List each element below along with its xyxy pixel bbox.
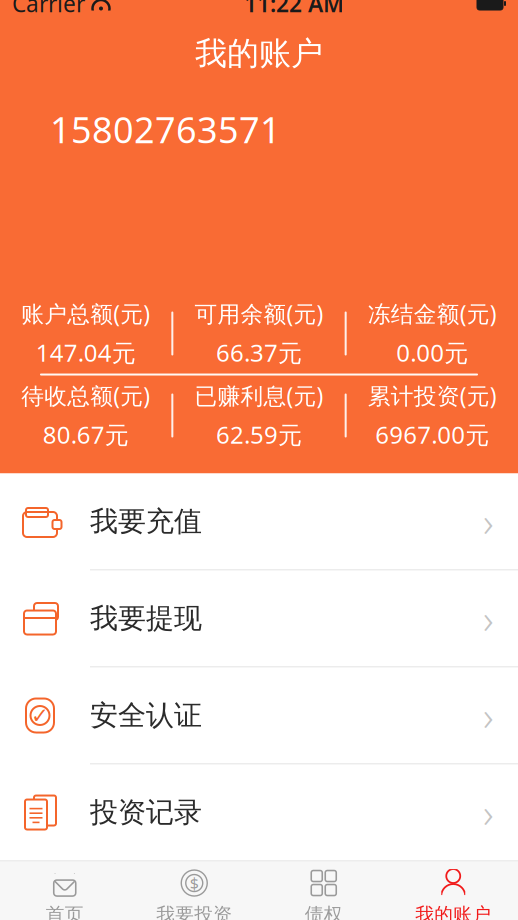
staticText: 15802763571 [50, 105, 281, 153]
button[interactable]: 投资记录 [0, 764, 518, 860]
staticText: 我的账户 [195, 34, 323, 73]
button[interactable]: 债权 [259, 861, 388, 920]
staticText: 冻结金额(元) [368, 298, 497, 329]
staticText: 66.37元 [216, 337, 302, 368]
button[interactable]: 我要充值 [0, 473, 518, 570]
staticText: 我要充值 [90, 504, 202, 539]
staticText: › [483, 786, 494, 839]
staticText: 安全认证 [90, 698, 202, 733]
staticText: 可用余额(元) [194, 298, 323, 329]
staticText: 债权 [305, 903, 343, 920]
staticText: 我要投资 [156, 903, 232, 920]
staticText: › [483, 689, 494, 742]
staticText: 累计投资(元) [368, 380, 497, 411]
staticText: 已赚利息(元) [194, 380, 323, 411]
staticText: 62.59元 [216, 419, 302, 450]
staticText: › [483, 495, 494, 548]
staticText: ✓ [31, 703, 49, 728]
staticText: Carrier [12, 0, 85, 18]
staticText: 6967.00元 [375, 419, 489, 450]
staticText: 我要提现 [90, 601, 202, 636]
button[interactable]: 我的账户 [388, 861, 518, 920]
button[interactable]: 首页 [0, 861, 129, 920]
button[interactable]: 我要提现 [0, 570, 518, 667]
staticText: 80.67元 [43, 419, 129, 450]
button[interactable]: ✓ [0, 667, 518, 764]
staticText: 首页 [46, 903, 84, 920]
staticText: 待收总额(元) [21, 380, 150, 411]
staticText: 我的账户 [415, 903, 491, 920]
staticText: › [483, 592, 494, 645]
staticText: $ [190, 872, 199, 894]
staticText: 账户总额(元) [21, 298, 150, 329]
staticText: 投资记录 [90, 795, 202, 830]
staticText: 147.04元 [36, 337, 136, 368]
staticText: 0.00元 [396, 337, 468, 368]
button[interactable]: $ [129, 861, 259, 920]
staticText: 11:22 AM [244, 0, 344, 18]
